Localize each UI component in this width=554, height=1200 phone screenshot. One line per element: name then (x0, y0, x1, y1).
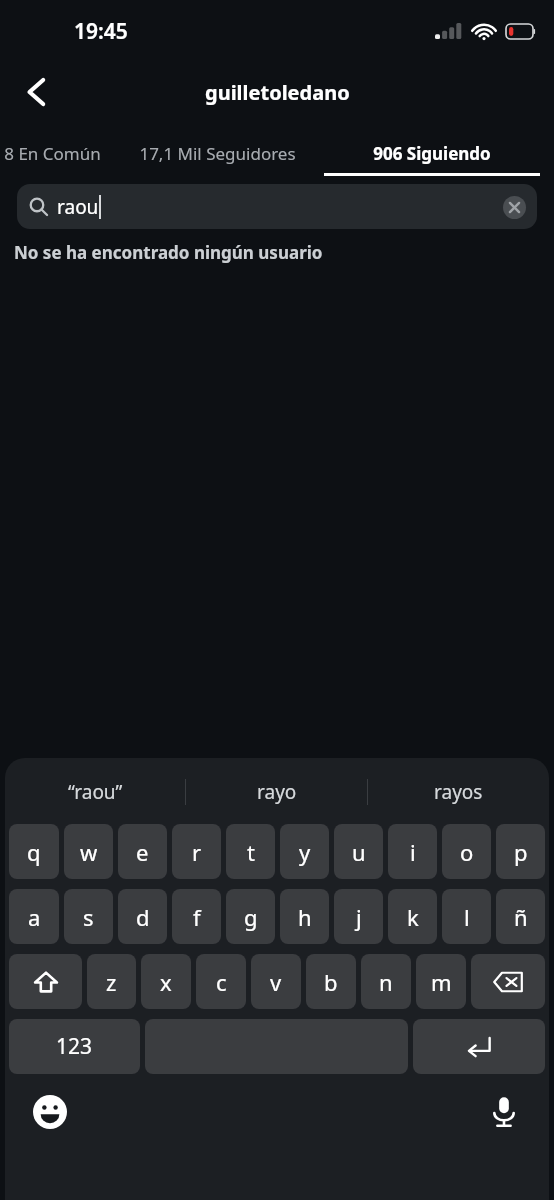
staticText: x (160, 967, 172, 997)
button[interactable]: o (442, 824, 491, 879)
staticText: 17,1 Mil Seguidores (139, 142, 296, 165)
button[interactable]: s (64, 889, 113, 944)
staticText: s (83, 902, 94, 932)
button[interactable]: d (118, 889, 167, 944)
button[interactable]: 8 En Común (0, 122, 115, 184)
staticText: ñ (514, 902, 528, 932)
button[interactable]: v (251, 954, 301, 1009)
staticText: o (460, 837, 474, 867)
staticText: d (136, 902, 150, 932)
button[interactable]: f (172, 889, 221, 944)
button[interactable]: q (9, 824, 59, 879)
button[interactable]: k (388, 889, 437, 944)
staticText: 8 En Común (4, 142, 101, 165)
button[interactable]: rayos (368, 766, 549, 818)
button[interactable]: 17,1 Mil Seguidores (125, 122, 310, 184)
staticText: z (106, 967, 117, 997)
button[interactable]: y (280, 824, 329, 879)
staticText: g (244, 902, 258, 932)
staticText: raou (57, 194, 99, 220)
staticText: u (352, 837, 366, 867)
staticText: guilletoledano (205, 79, 350, 106)
button[interactable]: c (196, 954, 246, 1009)
button[interactable]: rayo (186, 766, 367, 818)
button[interactable]: Enter (413, 1019, 545, 1074)
button[interactable]: p (496, 824, 545, 879)
staticText: f (193, 902, 201, 932)
staticText: b (324, 967, 338, 997)
button[interactable]: ñ (496, 889, 545, 944)
staticText: rayos (434, 779, 483, 805)
staticText: 123 (56, 1032, 93, 1061)
staticText: m (431, 967, 452, 997)
staticText: c (216, 967, 227, 997)
button[interactable]: z (87, 954, 136, 1009)
staticText: v (270, 967, 282, 997)
button[interactable]: r (172, 824, 221, 879)
staticText: r (192, 837, 202, 867)
button[interactable]: Shift (9, 954, 82, 1009)
staticText: t (247, 837, 255, 867)
staticText: 19:45 (74, 17, 128, 46)
button[interactable]: u (334, 824, 383, 879)
staticText: e (136, 837, 149, 867)
staticText: p (514, 837, 528, 867)
button[interactable]: Backspace (471, 954, 545, 1009)
staticText: “raou” (68, 779, 123, 805)
button[interactable]: l (442, 889, 491, 944)
button[interactable]: t (226, 824, 275, 879)
button[interactable]: raou (17, 184, 537, 229)
staticText: w (80, 837, 98, 867)
button[interactable]: Back (14, 69, 60, 115)
staticText: k (407, 902, 419, 932)
button[interactable]: j (334, 889, 383, 944)
button[interactable]: g (226, 889, 275, 944)
button[interactable]: h (280, 889, 329, 944)
staticText: No se ha encontrado ningún usuario (14, 241, 323, 264)
staticText: y (299, 837, 311, 867)
button[interactable]: a (9, 889, 59, 944)
button[interactable]: m (416, 954, 466, 1009)
staticText: 906 Siguiendo (373, 142, 491, 165)
button[interactable]: b (306, 954, 356, 1009)
staticText: a (28, 902, 41, 932)
button[interactable]: “raou” (5, 766, 185, 818)
button[interactable]: e (118, 824, 167, 879)
button[interactable]: Emoji (29, 1091, 71, 1133)
button[interactable]: w (64, 824, 113, 879)
button[interactable]: Voice input (483, 1091, 525, 1133)
button[interactable]: i (388, 824, 437, 879)
button[interactable]: x (141, 954, 191, 1009)
button[interactable]: 123 (9, 1019, 140, 1074)
staticText: rayo (257, 779, 297, 805)
button[interactable]: Clear (501, 194, 527, 220)
button[interactable]: n (361, 954, 411, 1009)
staticText: j (356, 902, 362, 932)
staticText: i (410, 837, 416, 867)
staticText: q (27, 837, 41, 867)
staticText: l (464, 902, 470, 932)
staticText: n (379, 967, 393, 997)
staticText: h (298, 902, 312, 932)
button[interactable]: 906 Siguiendo (310, 122, 554, 184)
